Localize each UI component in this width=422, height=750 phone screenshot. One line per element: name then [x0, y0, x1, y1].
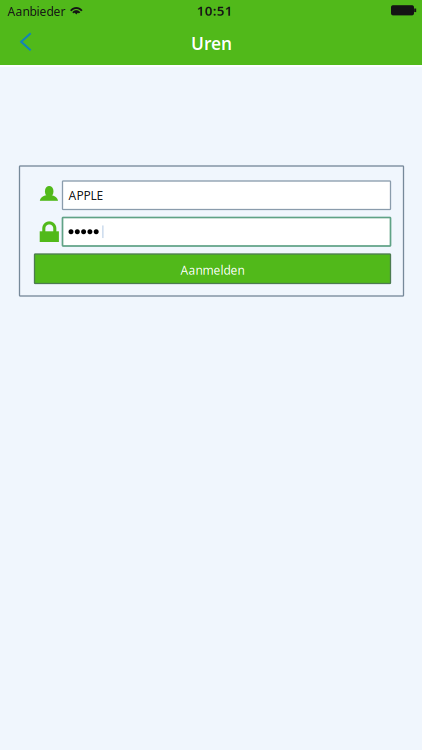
- button[interactable]: Aanmelden: [34, 254, 390, 283]
- button[interactable]: Back: [0, 22, 52, 65]
- staticText: Aanmelden: [180, 262, 244, 278]
- staticText: APPLE: [68, 187, 103, 203]
- staticText: Aanbieder: [8, 3, 66, 19]
- staticText: 10:51: [197, 2, 233, 19]
- staticText: Uren: [191, 32, 232, 55]
